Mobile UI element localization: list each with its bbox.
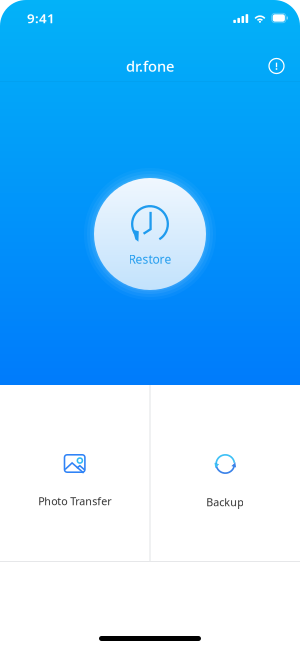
button[interactable]: Backup bbox=[151, 385, 300, 562]
staticText: Backup bbox=[206, 495, 244, 509]
staticText: 9:41 bbox=[27, 9, 55, 27]
button[interactable]: Photo Transfer bbox=[0, 385, 149, 562]
button[interactable]: Alerts bbox=[258, 48, 294, 84]
staticText: dr.fone bbox=[126, 56, 174, 76]
button[interactable]: Restore bbox=[84, 168, 216, 300]
staticText: Photo Transfer bbox=[38, 494, 111, 508]
staticText: Restore bbox=[128, 251, 171, 267]
